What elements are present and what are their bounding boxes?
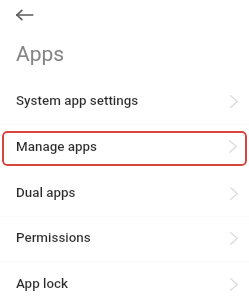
button[interactable]: Back — [9, 0, 39, 30]
staticText: Dual apps — [16, 185, 76, 201]
button[interactable]: App lock — [0, 264, 249, 300]
button[interactable]: System app settings — [0, 81, 249, 121]
button[interactable]: Manage apps — [2, 131, 247, 166]
staticText: Permissions — [16, 230, 91, 246]
staticText: Manage apps — [16, 139, 98, 155]
button[interactable]: Dual apps — [0, 173, 249, 213]
button[interactable]: Permissions — [0, 218, 249, 258]
staticText: Apps — [16, 42, 65, 67]
staticText: App lock — [16, 276, 69, 292]
staticText: System app settings — [16, 93, 139, 109]
